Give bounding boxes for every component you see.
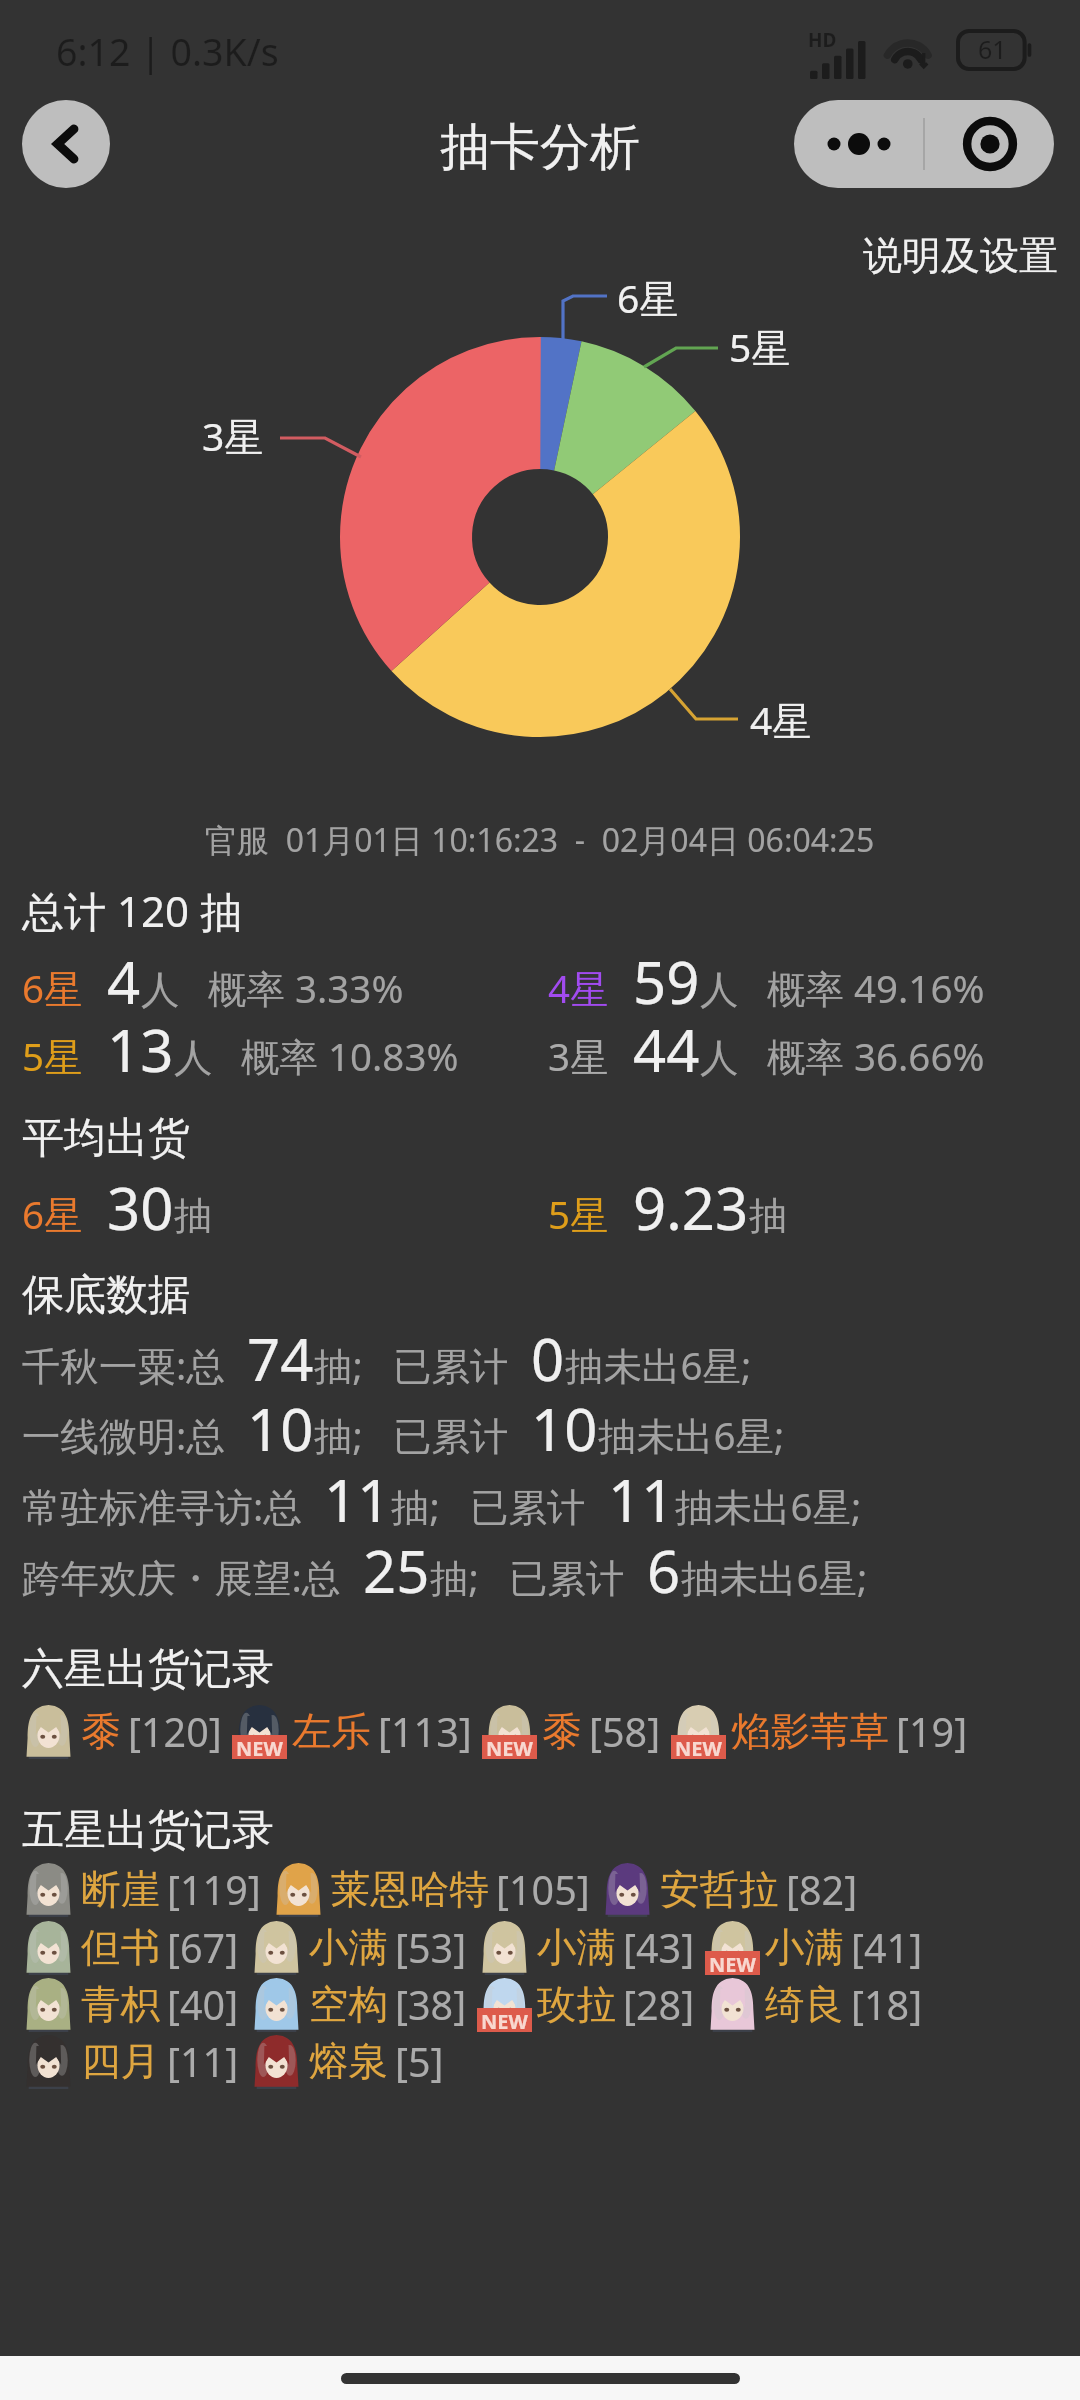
staticText: 空构 <box>309 1980 388 2030</box>
staticText: 44 <box>633 1010 700 1089</box>
staticText: 11 <box>608 1460 675 1539</box>
staticText: 5星 <box>729 320 791 373</box>
staticText: HD <box>808 27 837 53</box>
staticText: [18] <box>851 1978 923 2032</box>
staticText: 抽; <box>314 1409 363 1462</box>
staticText: 4 <box>107 942 141 1021</box>
staticText: 黍 <box>81 1707 121 1757</box>
staticText: 抽 <box>749 1192 788 1241</box>
staticText: [38] <box>395 1978 467 2032</box>
staticText: 保底数据 <box>22 1269 190 1322</box>
staticText: 莱恩哈特 <box>331 1865 489 1915</box>
staticText: 59 <box>633 942 700 1021</box>
staticText: 74 <box>247 1319 314 1398</box>
staticText: 安哲拉 <box>660 1865 779 1915</box>
staticText: [113] <box>378 1705 472 1759</box>
staticText: 小满 <box>765 1923 844 1973</box>
staticText: [43] <box>623 1921 695 1975</box>
staticText: [67] <box>167 1921 239 1975</box>
staticText: 5星 <box>22 1030 83 1083</box>
staticText: 千秋一粟:总 <box>22 1339 225 1392</box>
staticText: 10 <box>247 1389 314 1468</box>
staticText: [11] <box>167 2035 239 2089</box>
staticText: 平均出货 <box>22 1112 190 1165</box>
staticText: 一线微明:总 <box>22 1409 225 1462</box>
staticText: 概率 49.16% <box>767 962 985 1015</box>
staticText: [58] <box>589 1705 661 1759</box>
staticText: 概率 3.33% <box>208 962 404 1015</box>
button[interactable]: Close mini program <box>925 100 1054 188</box>
staticText: [19] <box>896 1705 968 1759</box>
staticText: 黍 <box>542 1707 582 1757</box>
staticText: 已累计 <box>509 1555 625 1604</box>
staticText: [28] <box>623 1978 695 2032</box>
staticText: 3星 <box>548 1030 609 1083</box>
staticText: 已累计 <box>393 1343 509 1392</box>
staticText: 6星 <box>22 1188 83 1241</box>
staticText: 人 <box>174 1034 213 1083</box>
staticText: 13 <box>107 1010 174 1089</box>
staticText: 6 <box>647 1531 681 1610</box>
staticText: [105] <box>496 1863 590 1917</box>
button[interactable]: More options <box>794 100 923 188</box>
staticText: 左乐 <box>292 1707 371 1757</box>
staticText: 抽未出6星; <box>565 1339 752 1392</box>
staticText: 人 <box>141 966 180 1015</box>
staticText: 30 <box>107 1168 174 1247</box>
staticText: 抽; <box>314 1339 363 1392</box>
staticText: 小满 <box>537 1923 616 1973</box>
staticText: 3星 <box>202 409 264 462</box>
staticText: 四月 <box>81 2037 160 2087</box>
staticText: 已累计 <box>393 1413 509 1462</box>
staticText: 焰影苇草 <box>731 1707 889 1757</box>
staticText: 小满 <box>309 1923 388 1973</box>
staticText: 官服 01月01日 10:16:23 - 02月04日 06:04:25 <box>205 818 875 862</box>
staticText: 跨年欢庆・展望:总 <box>22 1551 341 1604</box>
staticText: [82] <box>786 1863 858 1917</box>
staticText: [120] <box>128 1705 222 1759</box>
staticText: 6:12 | 0.3K/s <box>56 26 279 77</box>
staticText: 0 <box>531 1319 565 1398</box>
staticText: 人 <box>700 966 739 1015</box>
staticText: 人 <box>700 1034 739 1083</box>
staticText: 概率 36.66% <box>767 1030 985 1083</box>
staticText: 抽未出6星; <box>675 1480 862 1533</box>
staticText: 11 <box>324 1460 391 1539</box>
staticText: 五星出货记录 <box>22 1804 274 1857</box>
staticText: NEW <box>675 1735 722 1759</box>
staticText: 但书 <box>81 1923 160 1973</box>
staticText: 玫拉 <box>537 1980 616 2030</box>
staticText: [53] <box>395 1921 467 1975</box>
staticText: NEW <box>486 1735 533 1759</box>
staticText: 概率 10.83% <box>241 1030 459 1083</box>
staticText: 25 <box>363 1531 430 1610</box>
staticText: [40] <box>167 1978 239 2032</box>
staticText: 已累计 <box>470 1484 586 1533</box>
staticText: 9.23 <box>633 1168 749 1247</box>
staticText: 61 <box>978 32 1007 66</box>
staticText: 6星 <box>617 271 679 324</box>
staticText: 4星 <box>548 962 609 1015</box>
staticText: 熔泉 <box>309 2037 388 2087</box>
button[interactable]: 说明及设置 <box>863 231 1058 280</box>
button[interactable]: Back <box>22 100 110 188</box>
staticText: 抽; <box>391 1480 440 1533</box>
staticText: NEW <box>709 1951 756 1975</box>
staticText: 5星 <box>548 1188 609 1241</box>
staticText: 抽卡分析 <box>440 116 640 179</box>
staticText: [41] <box>851 1921 923 1975</box>
staticText: 6星 <box>22 962 83 1015</box>
staticText: 抽未出6星; <box>598 1409 785 1462</box>
staticText: 绮良 <box>765 1980 844 2030</box>
staticText: 抽 <box>174 1192 213 1241</box>
staticText: 10 <box>531 1389 598 1468</box>
staticText: [119] <box>167 1863 261 1917</box>
staticText: 断崖 <box>81 1865 160 1915</box>
staticText: 抽; <box>430 1551 479 1604</box>
staticText: 抽未出6星; <box>681 1551 868 1604</box>
staticText: [5] <box>395 2035 444 2089</box>
staticText: 六星出货记录 <box>22 1643 274 1696</box>
staticText: 4星 <box>750 693 812 746</box>
staticText: NEW <box>481 2008 528 2032</box>
staticText: NEW <box>236 1735 283 1759</box>
